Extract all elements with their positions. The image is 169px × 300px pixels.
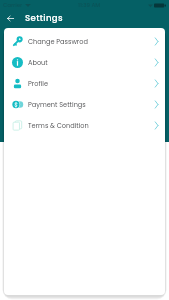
button[interactable]: About [4,52,165,73]
staticText: Settings [25,12,63,24]
staticText: 11:39 AM [78,1,101,9]
staticText: Payment Settings [28,100,86,109]
button[interactable]: Back [3,11,17,25]
button[interactable]: Payment Settings [4,94,165,115]
staticText: Carrier [3,1,23,9]
staticText: About [28,58,48,67]
button[interactable]: Profile [4,73,165,94]
staticText: Profile [28,79,48,88]
staticText: Change Passwrod [28,37,88,46]
button[interactable]: Terms & Condition [4,115,165,136]
button[interactable]: Change Passwrod [4,31,165,52]
staticText: Terms & Condition [28,121,89,130]
